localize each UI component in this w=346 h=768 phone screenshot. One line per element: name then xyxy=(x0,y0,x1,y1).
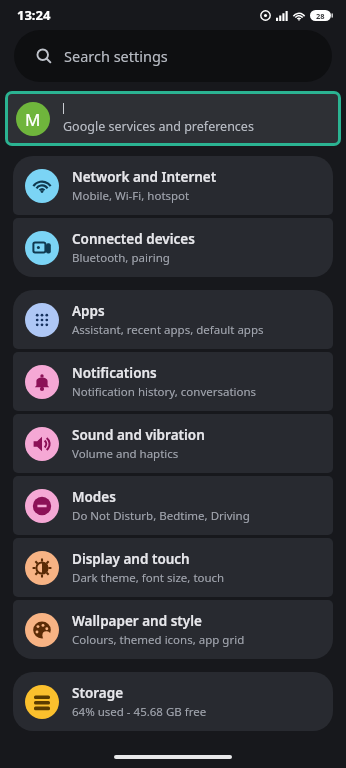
staticText: Modes xyxy=(72,488,116,506)
staticText: Do Not Disturb, Bedtime, Driving xyxy=(72,508,250,524)
other: DEVICES xyxy=(32,238,52,258)
button[interactable]: WIFI xyxy=(13,156,333,215)
staticText: Search settings xyxy=(64,46,168,66)
staticText: Network and Internet xyxy=(72,168,217,186)
button[interactable]: MINUS xyxy=(13,476,333,535)
staticText: Notifications xyxy=(72,364,157,382)
other: PALETTE xyxy=(32,620,52,640)
staticText: Storage xyxy=(72,684,124,702)
other: STORAGE xyxy=(32,692,52,712)
staticText: Sound and vibration xyxy=(72,426,205,444)
other: WIFI xyxy=(32,176,52,196)
button[interactable]: PALETTE xyxy=(13,600,333,659)
staticText: Bluetooth, pairing xyxy=(72,250,170,266)
staticText: 28 xyxy=(316,11,325,21)
other: VOLUME xyxy=(32,434,52,454)
button[interactable]: VOLUME xyxy=(13,414,333,473)
staticText: Connected devices xyxy=(72,230,195,248)
button[interactable]: M xyxy=(8,94,338,143)
button[interactable]: DEVICES xyxy=(13,218,333,277)
other: BRIGHT xyxy=(32,558,52,578)
staticText: Colours, themed icons, app grid xyxy=(72,632,245,648)
button[interactable]: STORAGE xyxy=(13,672,333,731)
staticText: Display and touch xyxy=(72,550,190,568)
staticText: 64% used - 45.68 GB free xyxy=(72,704,207,720)
button[interactable]: BRIGHT xyxy=(13,538,333,597)
staticText: Google services and preferences xyxy=(63,118,254,135)
staticText: Dark theme, font size, touch xyxy=(72,570,225,586)
button[interactable]: APPS xyxy=(13,290,333,349)
staticText: Volume and haptics xyxy=(72,446,179,462)
staticText: 13:24 xyxy=(17,6,51,24)
other: BELL xyxy=(32,372,52,392)
staticText: Notification history, conversations xyxy=(72,384,257,400)
staticText: Apps xyxy=(72,302,105,320)
staticText: M xyxy=(25,108,41,131)
button[interactable]: Search settings xyxy=(14,30,332,82)
button[interactable]: BELL xyxy=(13,352,333,411)
other: MINUS xyxy=(32,496,52,516)
staticText: Mobile, Wi-Fi, hotspot xyxy=(72,188,190,204)
other: APPS xyxy=(32,310,52,330)
staticText: Assistant, recent apps, default apps xyxy=(72,322,264,338)
staticText: Wallpaper and style xyxy=(72,612,202,630)
